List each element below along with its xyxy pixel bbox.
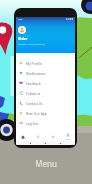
- staticText: Rider: [18, 36, 28, 41]
- staticText: Rate Our App: [26, 111, 47, 115]
- button[interactable]: Log Out: [16, 118, 75, 128]
- button[interactable]: Menu: [60, 133, 75, 141]
- button[interactable]: Orders: [30, 133, 45, 141]
- button[interactable]: Feedback: [16, 78, 75, 88]
- staticText: Menu: [65, 138, 71, 141]
- staticText: Notifications: [26, 71, 46, 75]
- staticText: Follow us: [26, 91, 41, 95]
- staticText: Version 1.0.0 (Staging): [18, 42, 45, 45]
- button[interactable]: Follow us: [16, 88, 75, 98]
- staticText: My Profile: [26, 61, 42, 65]
- staticText: 9:41: [18, 18, 23, 21]
- button[interactable]: Notifications: [16, 68, 75, 78]
- button[interactable]: Home: [16, 133, 30, 141]
- staticText: Feedback: [26, 81, 41, 85]
- button[interactable]: My Profile: [16, 58, 75, 68]
- button[interactable]: Wallet: [45, 133, 60, 141]
- button[interactable]: Contact Us: [16, 98, 75, 108]
- staticText: Contact Us: [26, 101, 43, 105]
- button[interactable]: Rate Our App: [16, 108, 75, 118]
- staticText: Menu: [35, 158, 57, 169]
- staticText: Log Out: [26, 121, 39, 125]
